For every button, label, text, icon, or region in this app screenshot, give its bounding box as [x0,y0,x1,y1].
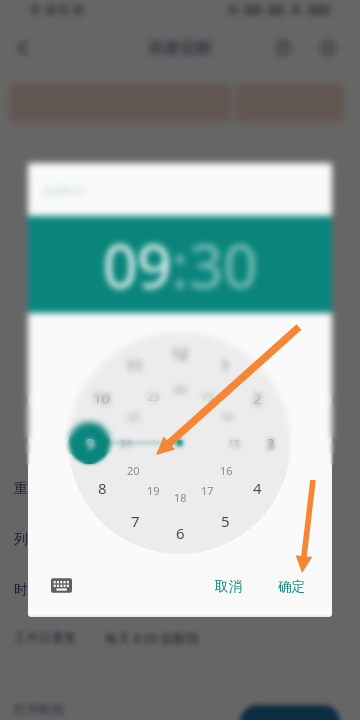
staticText: 17 [201,483,214,498]
button[interactable]: 取消 [204,572,252,600]
button[interactable]: Delete [271,36,295,60]
button[interactable]: 确定 [267,572,315,600]
button[interactable]: More options [316,36,340,60]
staticText: 15 [228,436,241,451]
staticText: 15 [228,436,241,451]
button[interactable]: Switch to keyboard input [48,572,75,599]
button[interactable]: Switch to keyboard input [48,572,75,599]
button[interactable]: 30 [189,224,258,306]
button[interactable]: 取消 [204,572,252,600]
button[interactable]: Back [10,36,34,60]
staticText: 时间 [14,581,42,599]
staticText: 13 [201,389,214,404]
button[interactable]: 30 [189,224,258,306]
button[interactable]: 09 [103,224,172,306]
staticText: 30 [189,224,258,306]
button[interactable]: More options [316,36,340,60]
button[interactable]: 确定 [267,572,315,600]
button[interactable]: More options [316,36,340,60]
button[interactable]: Back [10,36,34,60]
button[interactable]: More options [316,36,340,60]
staticText: 22 [127,409,140,424]
button[interactable]: 09 [103,224,172,306]
staticText: 打开时间 [14,702,64,718]
button[interactable]: Delete [271,36,295,60]
button[interactable]: Back [10,36,34,60]
button[interactable]: 取消 [204,572,252,600]
staticText: 时间 [14,581,42,599]
button[interactable]: Switch to keyboard input [48,572,75,599]
button[interactable]: More options [316,36,340,60]
staticText: 11 [126,355,144,375]
button[interactable]: 取消 [204,572,252,600]
button[interactable]: Back [10,36,34,60]
staticText: 时间 [14,581,42,599]
staticText: 9 [86,433,95,453]
button[interactable]: 30 [189,224,258,306]
button[interactable]: 09 [103,224,172,306]
staticText: 7 [131,511,140,531]
button[interactable]: 09 [103,224,172,306]
button[interactable]: 30 [189,224,258,306]
staticText: 18 [174,490,187,505]
button[interactable]: 30 [189,224,258,306]
staticText: 10 [93,388,111,408]
staticText: 09 [103,224,172,306]
staticText: 时间 [14,581,42,599]
staticText: 列表 [14,531,42,549]
button[interactable]: 09 [103,224,172,306]
button[interactable]: Delete [271,36,295,60]
staticText: 8 [98,478,107,498]
button[interactable]: Delete [271,36,295,60]
button[interactable]: Back [10,36,34,60]
staticText: 30 [189,224,258,306]
button[interactable]: Delete [271,36,295,60]
button[interactable]: Back [10,36,34,60]
button[interactable]: 30 [189,224,258,306]
staticText: 13 [201,389,214,404]
staticText: 7 [131,511,140,531]
staticText: 6 [176,523,185,543]
button[interactable]: 30 [189,224,258,306]
staticText: 11 [126,355,144,375]
staticText: 6 [176,523,185,543]
button[interactable]: 取消 [204,572,252,600]
staticText: 16 [220,463,233,478]
staticText: 20 [127,463,140,478]
staticText: 22 [127,409,140,424]
staticText: 1 [221,355,230,375]
staticText: 8 [98,478,107,498]
staticText: 2 [253,388,262,408]
button[interactable]: Delete [271,36,295,60]
button[interactable]: 确定 [267,572,315,600]
button[interactable]: 确定 [267,572,315,600]
staticText: 4 [253,478,262,498]
button[interactable]: Switch to keyboard input [48,572,75,599]
button[interactable]: Switch to keyboard input [48,572,75,599]
button[interactable]: More options [316,36,340,60]
button[interactable]: Switch to keyboard input [48,572,75,599]
staticText: 18 [174,490,187,505]
button[interactable]: 09 [103,224,172,306]
button[interactable]: 取消 [204,572,252,600]
button[interactable]: 09 [103,224,172,306]
button[interactable]: Back [10,36,34,60]
staticText: 每天 8:00 提醒我 [105,630,199,647]
button[interactable]: 取消 [204,572,252,600]
staticText: 19 [147,483,160,498]
staticText: 12 [171,343,189,363]
button[interactable]: 确定 [267,572,315,600]
staticText: 新建提醒 [148,38,212,58]
button[interactable]: Switch to keyboard input [48,572,75,599]
button[interactable]: More options [316,36,340,60]
button[interactable]: 确定 [267,572,315,600]
staticText: 确定 [278,578,305,595]
staticText: 8 [98,478,107,498]
staticText: 23 [147,389,160,404]
button[interactable]: Delete [271,36,295,60]
staticText: 选择时间 [42,184,86,198]
staticText: 5 [221,511,230,531]
button[interactable]: 确定 [267,572,315,600]
staticText: 12 [171,343,189,363]
staticText: 每天 8:00 提醒我 [105,630,199,647]
